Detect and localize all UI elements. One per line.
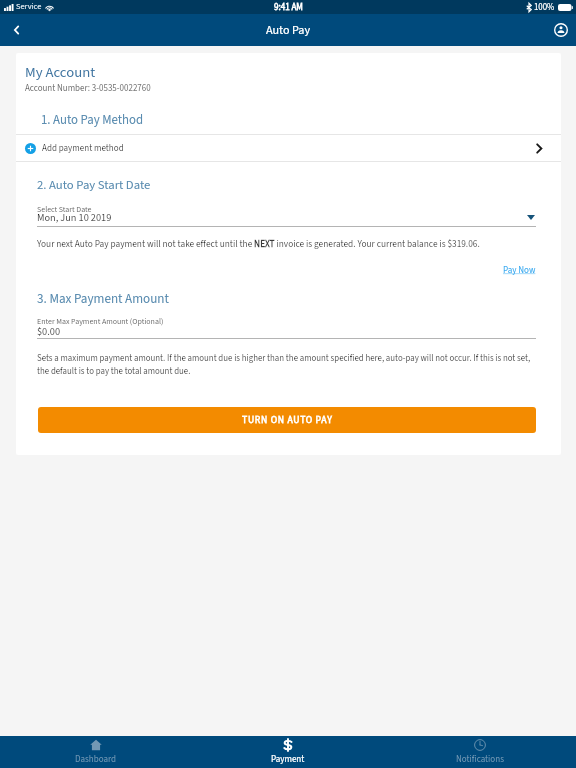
staticText: My Account — [25, 62, 96, 83]
button[interactable]: Payment — [192, 736, 384, 768]
staticText: 100% — [534, 1, 555, 14]
staticText: Select Start Date — [37, 204, 92, 215]
staticText: Your next Auto Pay payment will not take… — [37, 237, 480, 250]
staticText: Pay Now — [503, 264, 536, 277]
staticText: 2. Auto Pay Start Date — [37, 176, 151, 194]
staticText: Notifications — [456, 753, 504, 766]
staticText: Enter Max Payment Amount (Optional) — [37, 316, 164, 327]
staticText: 1. Auto Pay Method — [41, 111, 144, 129]
button[interactable]: Mon, Jun 10 2019 — [37, 210, 536, 225]
staticText: TURN ON AUTO PAY — [242, 413, 333, 427]
staticText: Dashboard — [75, 753, 117, 766]
staticText: 3. Max Payment Amount — [37, 290, 169, 309]
staticText: $0.00 — [37, 324, 61, 339]
staticText: Add payment method — [42, 142, 124, 155]
staticText: Payment — [271, 753, 305, 766]
staticText: Account Number: 3-0535-0022760 — [25, 82, 151, 95]
staticText: Sets a maximum payment amount. If the am… — [37, 352, 536, 378]
button[interactable]: Pay Now — [503, 264, 536, 277]
button[interactable]: Add payment method — [16, 135, 561, 161]
staticText: Auto Pay — [266, 22, 311, 39]
staticText: Service — [16, 1, 42, 13]
button[interactable]: Account — [546, 14, 576, 46]
staticText: Mon, Jun 10 2019 — [37, 210, 112, 225]
staticText: 9:41 AM — [274, 1, 303, 14]
button[interactable]: Notifications — [384, 736, 576, 768]
button[interactable]: TURN ON AUTO PAY — [38, 407, 536, 433]
button[interactable]: Dashboard — [0, 736, 192, 768]
button[interactable]: Back — [0, 14, 32, 46]
